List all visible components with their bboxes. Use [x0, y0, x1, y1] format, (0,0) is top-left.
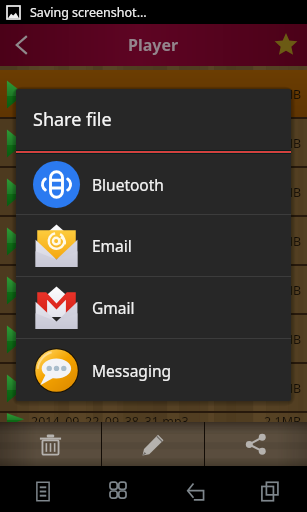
staticText: 2.1MB	[264, 233, 302, 250]
button[interactable]: Back	[168, 466, 224, 512]
button[interactable]: Back	[0, 24, 44, 66]
button[interactable]: Bluetooth	[16, 154, 291, 214]
button[interactable]: 2014_09_22_09_38_31.mp3	[0, 70, 307, 119]
staticText: 2014_09_22_09_38_31.mp3	[31, 282, 189, 299]
staticText: 2014_09_22_09_38_31.mp3	[31, 135, 189, 152]
button[interactable]: Recents	[242, 466, 298, 512]
button[interactable]: 2014_09_22_09_38_31.mp3	[0, 315, 307, 364]
button[interactable]: 2014_09_22_09_38_31.mp3	[0, 217, 307, 266]
staticText: 2014_09_22_09_38_31.mp3	[31, 184, 189, 201]
staticText: 2.1MB	[264, 413, 302, 426]
button[interactable]: Favorite	[265, 24, 307, 66]
button[interactable]: Menu	[15, 466, 71, 512]
staticText: Gmail	[92, 297, 135, 318]
staticText: Bluetooth	[92, 174, 164, 195]
staticText: 2.1MB	[264, 135, 302, 152]
button[interactable]: Apps	[90, 466, 146, 512]
staticText: 2.1MB	[264, 380, 302, 397]
staticText: Email	[92, 235, 132, 256]
button[interactable]: Gmail	[16, 277, 291, 338]
button[interactable]: 2014_09_22_09_38_31.mp3	[0, 364, 307, 413]
staticText: Player	[128, 34, 179, 56]
staticText: 2014_09_22_09_38_31.mp3	[31, 413, 189, 426]
staticText: 2014_09_22_09_38_31.mp3	[31, 86, 189, 103]
staticText: Messaging	[92, 360, 171, 381]
button[interactable]: 2014_09_22_09_38_31.mp3	[0, 168, 307, 217]
staticText: 2014_09_22_09_38_31.mp3	[31, 380, 189, 397]
staticText: 2014_09_22_09_38_31.mp3	[31, 331, 189, 348]
button[interactable]: 2014_09_22_09_38_31.mp3	[0, 266, 307, 315]
staticText: 2.1MB	[264, 86, 302, 103]
staticText: 2.1MB	[264, 282, 302, 299]
button[interactable]: 2014_09_22_09_38_31.mp3	[0, 413, 307, 426]
button[interactable]: 2014_09_22_09_38_31.mp3	[0, 119, 307, 168]
button[interactable]: Edit	[102, 422, 204, 466]
staticText: 2014_09_22_09_38_31.mp3	[31, 233, 189, 250]
button[interactable]: Share	[205, 422, 307, 466]
button[interactable]: Delete	[0, 422, 101, 466]
staticText: Saving screenshot…	[30, 4, 147, 21]
staticText: 2.1MB	[264, 184, 302, 201]
staticText: 2.1MB	[264, 331, 302, 348]
button[interactable]: Messaging	[16, 339, 291, 401]
staticText: Share file	[33, 107, 112, 132]
button[interactable]: Email	[16, 215, 291, 276]
